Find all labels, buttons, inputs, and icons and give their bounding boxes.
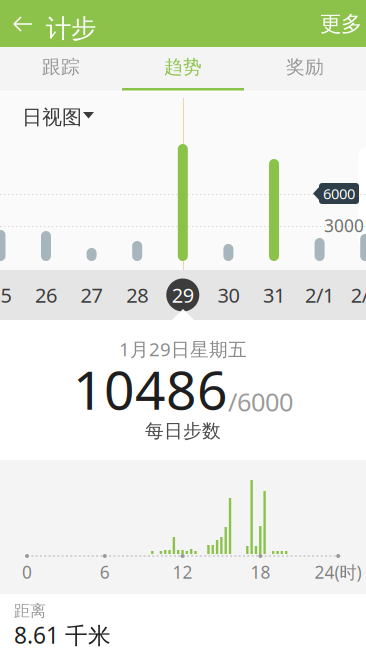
staticText: 6000 [323,184,355,203]
button[interactable]: 日视图 [22,100,118,128]
button[interactable]: 30 [206,272,251,318]
button[interactable]: 趋势 [122,47,244,91]
staticText: 8.61 千米 [14,620,111,650]
staticText: 0 [22,560,32,583]
button[interactable]: 2/2 [342,272,366,318]
staticText: 跟踪 [42,55,80,78]
button[interactable]: 更多 [313,2,366,46]
staticText: 2/1 [305,282,334,308]
staticText: 奖励 [286,55,324,78]
staticText: 10486 [73,354,228,424]
button[interactable]: 26 [23,272,69,318]
staticText: 2/2 [351,282,366,308]
staticText: 27 [81,282,103,308]
button[interactable]: 31 [251,272,297,318]
button[interactable]: 27 [69,272,114,318]
staticText: 29 [172,282,194,308]
staticText: 25 [0,282,11,308]
staticText: 1月29日星期五 [119,337,247,361]
staticText: 日视图 [22,105,82,130]
staticText: 每日步数 [145,419,221,442]
staticText: 26 [35,282,57,308]
staticText: /6000 [228,385,293,418]
staticText: 3000 [324,214,364,237]
staticText: 24(时) [314,560,361,583]
staticText: 趋势 [164,55,202,78]
button[interactable]: Back [1,2,45,46]
button[interactable]: 29 [160,272,206,318]
staticText: 12 [173,560,193,583]
button[interactable]: 跟踪 [0,47,122,91]
staticText: 31 [263,282,285,308]
staticText: 28 [126,282,148,308]
staticText: 18 [250,560,270,583]
button[interactable]: 28 [114,272,160,318]
staticText: 距离 [14,601,46,621]
staticText: 计步 [46,13,96,44]
staticText: 6 [100,560,110,583]
staticText: 30 [217,282,239,308]
button[interactable]: 25 [0,272,23,318]
button[interactable]: 2/1 [297,272,342,318]
button[interactable]: 奖励 [244,47,366,91]
staticText: 更多 [320,11,362,37]
